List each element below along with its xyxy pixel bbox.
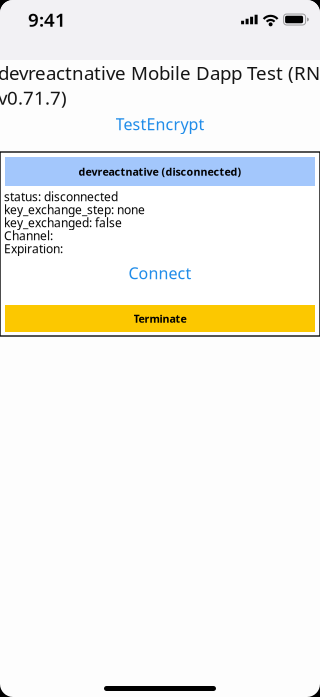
- button[interactable]: Terminate: [5, 305, 315, 332]
- staticText: Expiration:: [4, 240, 63, 256]
- staticText: Channel:: [4, 227, 53, 243]
- staticText: devreactnative Mobile Dapp Test (RN v0.7…: [0, 60, 320, 110]
- staticText: Terminate: [133, 311, 186, 326]
- staticText: 9:41: [28, 7, 66, 32]
- staticText: Connect: [128, 262, 191, 284]
- staticText: TestEncrypt: [115, 113, 204, 135]
- staticText: key_exchange_step: none: [4, 201, 145, 217]
- button[interactable]: Connect: [0, 261, 320, 285]
- staticText: status: disconnected: [4, 188, 118, 204]
- staticText: devreactnative (disconnected): [78, 164, 241, 179]
- button[interactable]: TestEncrypt: [0, 110, 320, 138]
- staticText: key_exchanged: false: [4, 214, 122, 230]
